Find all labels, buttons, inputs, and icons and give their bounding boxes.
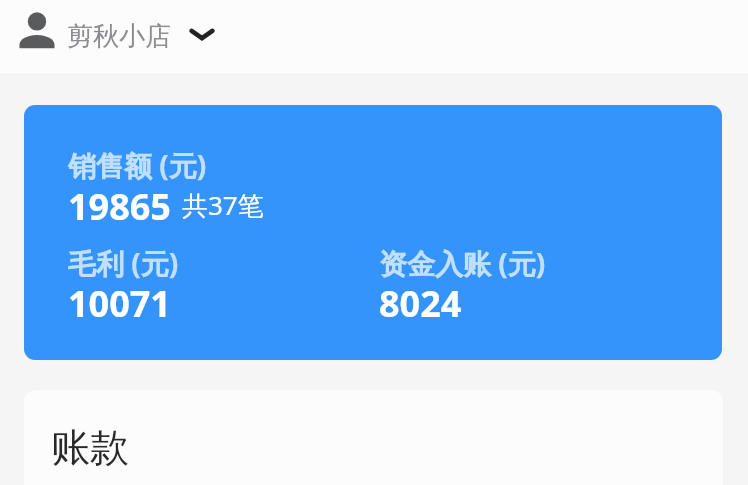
button[interactable]: Store avatar bbox=[0, 0, 227, 73]
staticText: 资金入账 (元) bbox=[379, 244, 546, 282]
staticText: 毛利 (元) bbox=[68, 244, 179, 282]
button[interactable]: 账款 bbox=[24, 390, 723, 485]
other: Switch store bbox=[189, 20, 215, 46]
staticText: 10071 bbox=[68, 279, 171, 328]
staticText: 19865 bbox=[68, 182, 171, 231]
staticText: 共37笔 bbox=[182, 187, 264, 223]
button[interactable]: 销售额 (元) bbox=[24, 105, 722, 360]
other: Store avatar bbox=[18, 9, 56, 51]
staticText: 销售额 (元) bbox=[68, 146, 207, 184]
staticText: 账款 bbox=[51, 423, 129, 472]
staticText: 剪秋小店 bbox=[67, 20, 171, 53]
staticText: 8024 bbox=[379, 279, 462, 328]
